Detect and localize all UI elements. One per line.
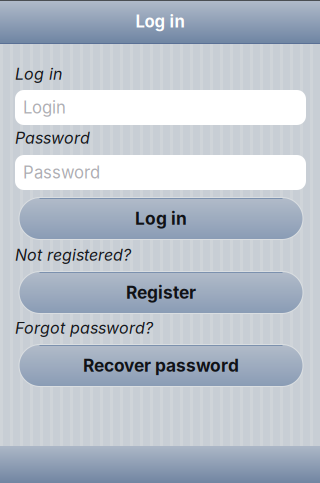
button[interactable]: Recover password <box>18 344 303 387</box>
staticText: Log in <box>135 11 184 32</box>
staticText: Log in <box>15 64 62 84</box>
staticText: Password <box>23 162 100 183</box>
button[interactable]: Register <box>18 271 303 314</box>
staticText: Register <box>126 282 196 303</box>
staticText: Log in <box>135 208 187 229</box>
staticText: Forgot password? <box>15 318 153 338</box>
staticText: Password <box>15 128 90 148</box>
button[interactable]: Log in <box>18 197 303 240</box>
staticText: Not registered? <box>15 245 131 265</box>
staticText: Recover password <box>83 355 239 376</box>
staticText: Login <box>23 97 66 118</box>
